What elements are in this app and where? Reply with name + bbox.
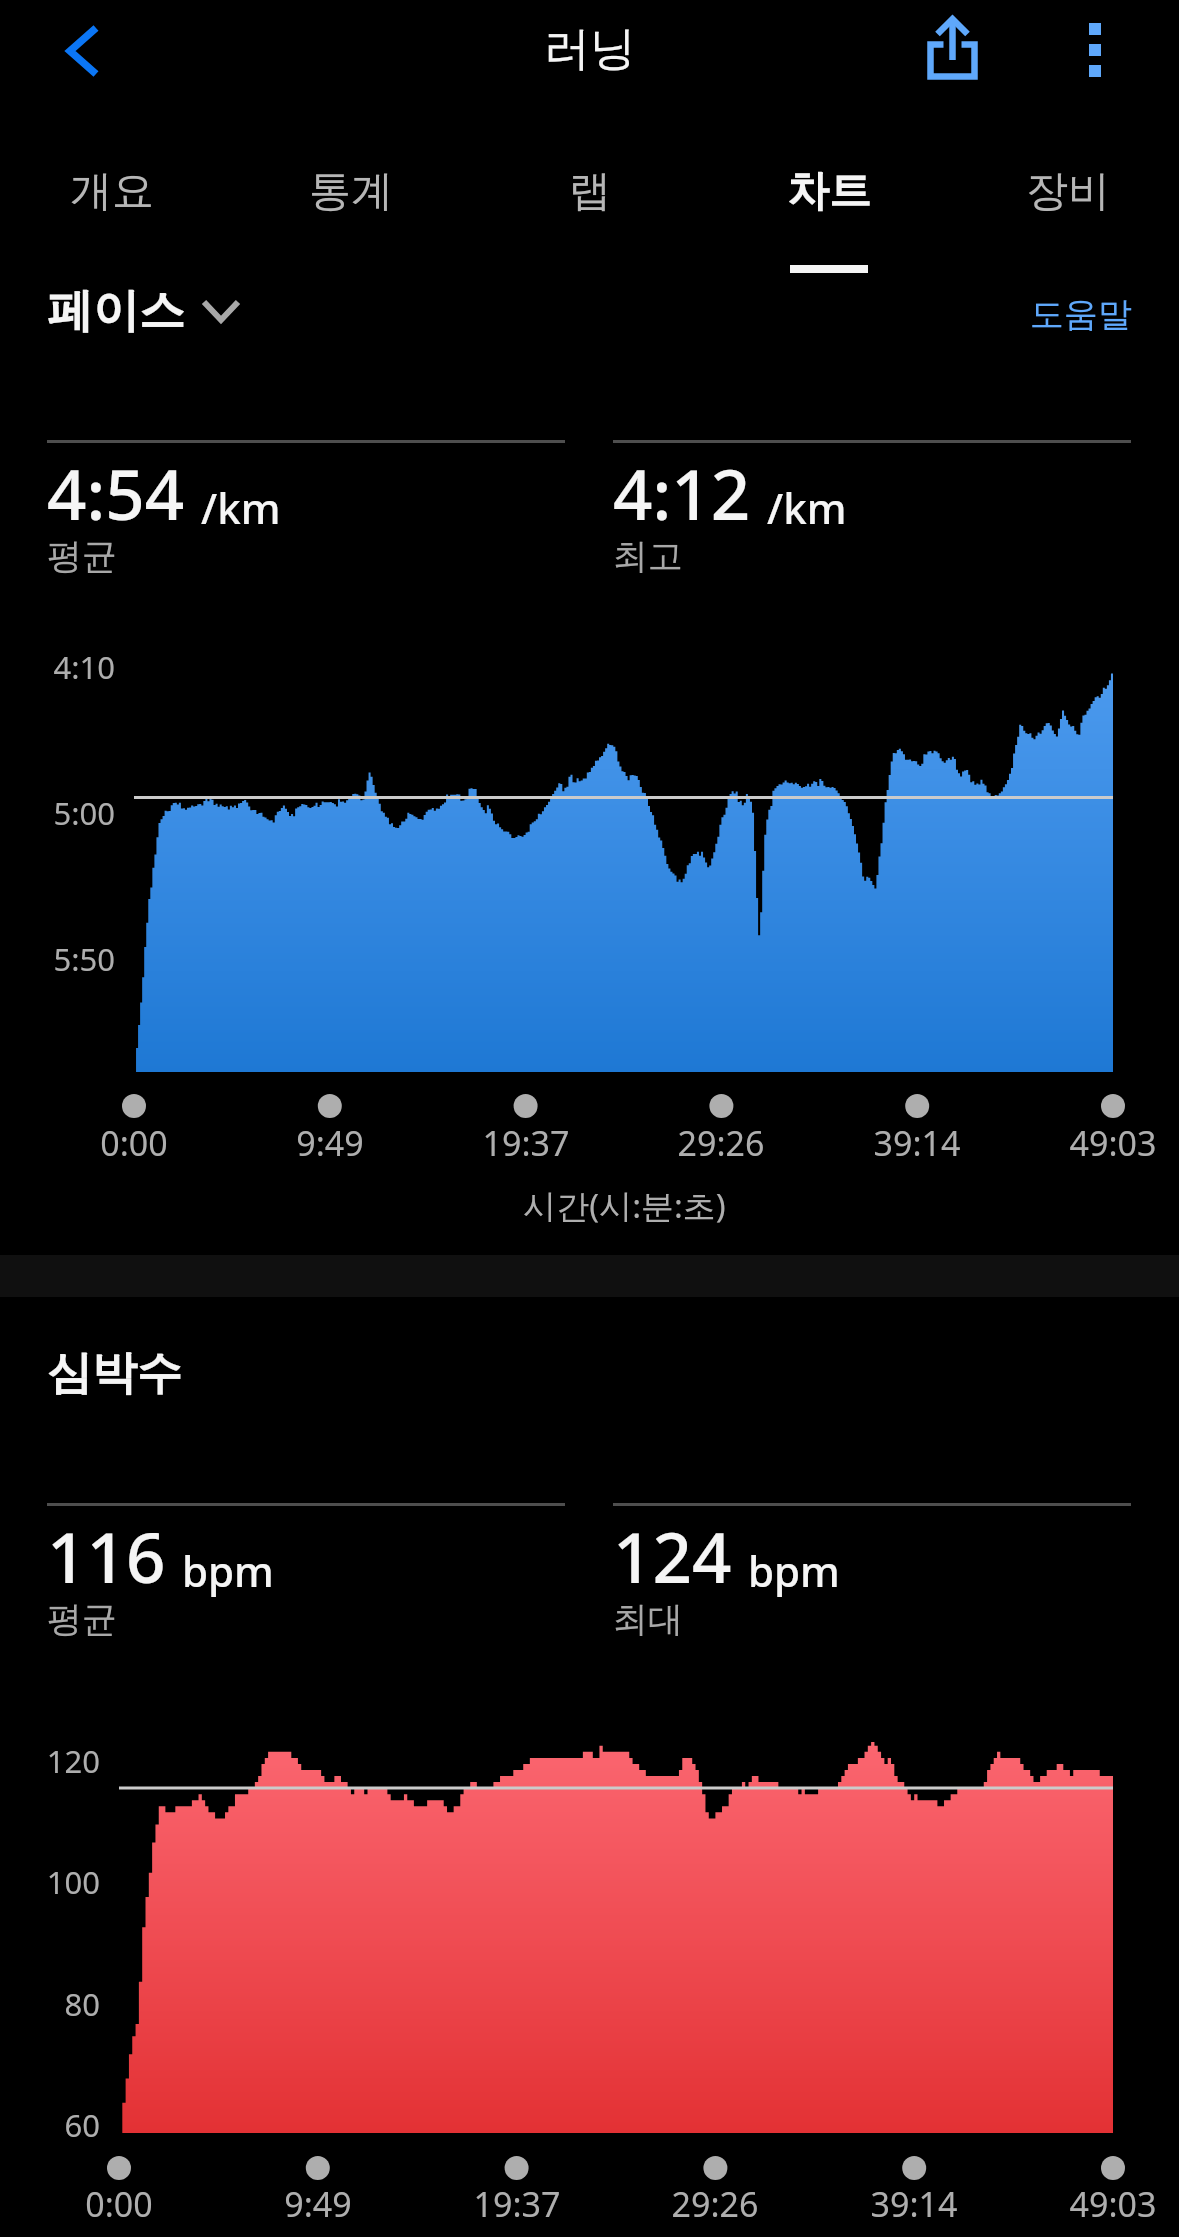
button[interactable]: 도움말	[1030, 293, 1132, 336]
staticText: 29:26	[601, 1120, 841, 1166]
staticText: 통계	[309, 165, 393, 218]
staticText: 120	[0, 1740, 100, 1782]
staticText: 60	[0, 2104, 100, 2146]
staticText: 80	[0, 1983, 100, 2025]
staticText: 페이스	[47, 282, 185, 340]
staticText: 차트	[787, 165, 871, 218]
button[interactable]: 통계	[231, 136, 470, 276]
staticText: 개요	[70, 165, 154, 218]
staticText: 29:26	[595, 2181, 835, 2227]
staticText: 39:14	[797, 1120, 1037, 1166]
staticText: 최대	[613, 1597, 683, 1641]
staticText: 9:49	[210, 1120, 450, 1166]
button[interactable]: Back	[28, 0, 132, 104]
staticText: /km	[767, 479, 847, 536]
staticText: 116	[47, 1509, 166, 1603]
staticText: 4:12	[613, 446, 751, 540]
staticText: 4:10	[0, 646, 115, 688]
staticText: 5:50	[0, 938, 115, 980]
staticText: 0:00	[0, 2181, 239, 2227]
button[interactable]: Share	[899, 0, 1003, 104]
button[interactable]: More options	[1043, 0, 1147, 104]
staticText: 49:03	[993, 1120, 1179, 1166]
button[interactable]: 개요	[0, 136, 231, 276]
staticText: 19:37	[406, 1120, 646, 1166]
staticText: 39:14	[794, 2181, 1034, 2227]
button[interactable]: 장비	[948, 136, 1179, 276]
staticText: 19:37	[397, 2181, 637, 2227]
staticText: 랩	[569, 165, 611, 218]
staticText: /km	[201, 479, 281, 536]
staticText: 49:03	[993, 2181, 1179, 2227]
staticText: 5:00	[0, 792, 115, 834]
staticText: 0:00	[14, 1120, 254, 1166]
staticText: bpm	[182, 1542, 274, 1599]
staticText: 100	[0, 1861, 100, 1903]
staticText: 평균	[47, 534, 117, 578]
staticText: 9:49	[198, 2181, 438, 2227]
staticText: 심박수	[47, 1345, 182, 1402]
button[interactable]: 차트	[709, 136, 948, 276]
staticText: 시간(시:분:초)	[35, 1183, 1179, 1228]
staticText: 최고	[613, 534, 683, 578]
staticText: 러닝	[544, 20, 636, 78]
button[interactable]: 페이스	[47, 282, 245, 340]
staticText: 장비	[1026, 165, 1110, 218]
staticText: 124	[613, 1509, 732, 1603]
staticText: bpm	[748, 1542, 840, 1599]
staticText: 4:54	[47, 446, 185, 540]
button[interactable]: 랩	[470, 136, 709, 276]
staticText: 평균	[47, 1597, 117, 1641]
